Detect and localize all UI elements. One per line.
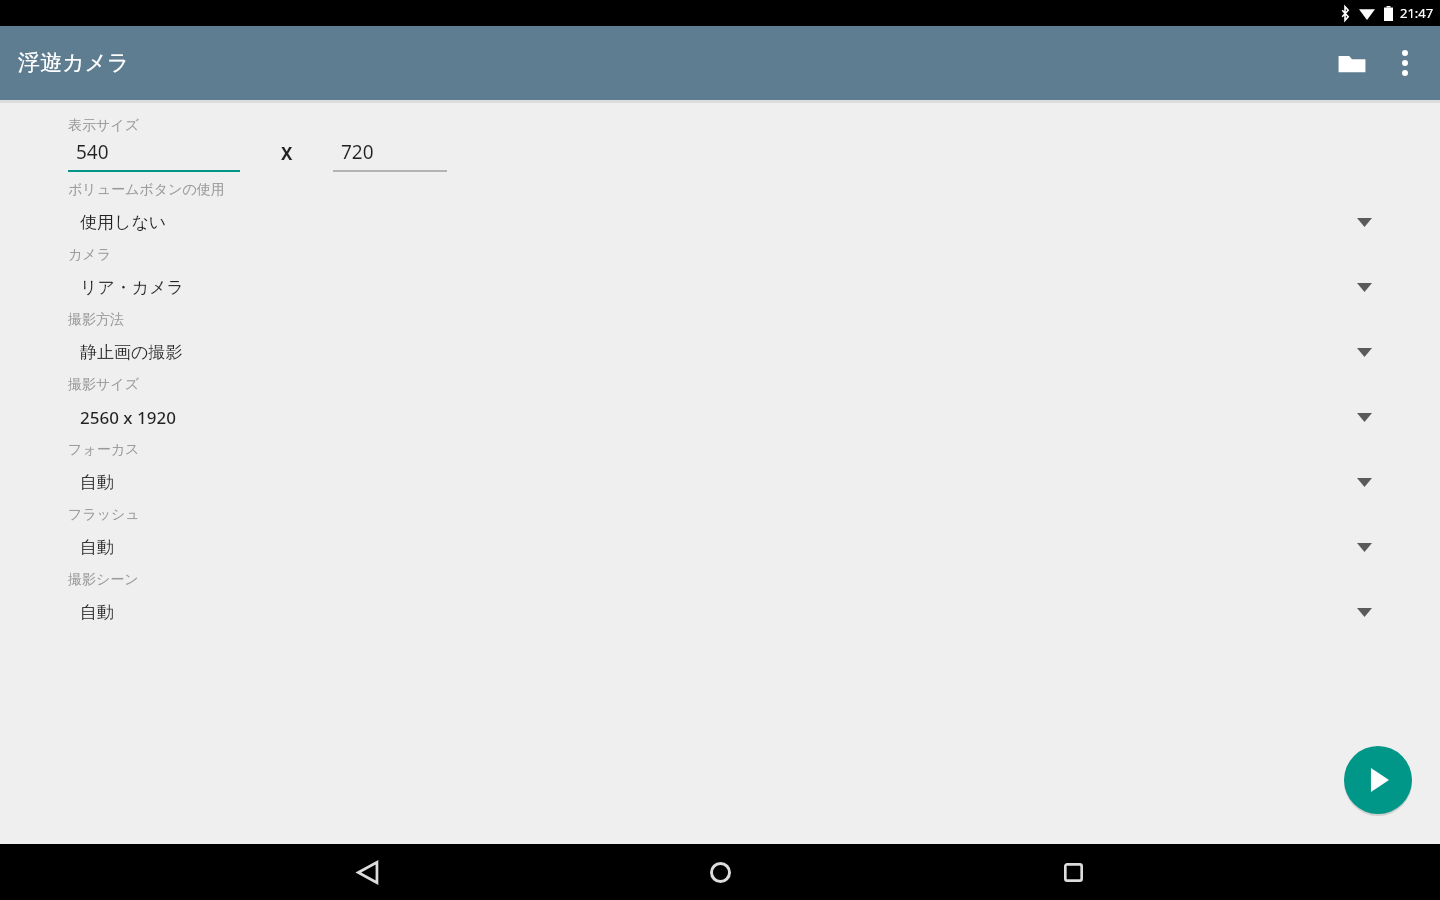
staticText: リア・カメラ (80, 277, 1357, 298)
button[interactable]: 自動 (68, 459, 1440, 506)
button[interactable]: リア・カメラ (68, 264, 1440, 311)
button[interactable]: 自動 (68, 524, 1440, 571)
button[interactable]: Open folder (1324, 35, 1380, 91)
button[interactable]: 540 (68, 135, 240, 172)
button[interactable]: 2560 x 1920 (68, 394, 1440, 441)
button[interactable]: 静止画の撮影 (68, 329, 1440, 376)
staticText: 静止画の撮影 (80, 342, 1357, 363)
button[interactable]: More options (1380, 38, 1430, 88)
staticText: 撮影サイズ (68, 376, 139, 394)
button[interactable]: Recent apps (1037, 844, 1109, 900)
staticText: 自動 (80, 602, 1357, 623)
staticText: 使用しない (80, 212, 1357, 233)
button[interactable]: Home (684, 844, 756, 900)
button[interactable]: 720 (333, 135, 447, 172)
staticText: ボリュームボタンの使用 (68, 181, 225, 199)
button[interactable]: Back (331, 844, 403, 900)
staticText: X (281, 142, 293, 165)
staticText: 2560 x 1920 (80, 406, 1357, 429)
staticText: 540 (76, 139, 109, 165)
staticText: カメラ (68, 246, 111, 264)
staticText: 浮遊カメラ (18, 49, 130, 77)
staticText: 720 (341, 139, 374, 165)
staticText: 撮影方法 (68, 311, 124, 329)
staticText: 表示サイズ (68, 117, 139, 135)
staticText: フォーカス (68, 441, 140, 459)
staticText: 自動 (80, 537, 1357, 558)
staticText: 撮影シーン (68, 571, 139, 589)
button[interactable]: Start camera (1344, 746, 1412, 814)
staticText: 21:47 (1400, 4, 1434, 22)
button[interactable]: 自動 (68, 589, 1440, 636)
staticText: フラッシュ (68, 506, 140, 524)
button[interactable]: 使用しない (68, 199, 1440, 246)
staticText: 自動 (80, 472, 1357, 493)
